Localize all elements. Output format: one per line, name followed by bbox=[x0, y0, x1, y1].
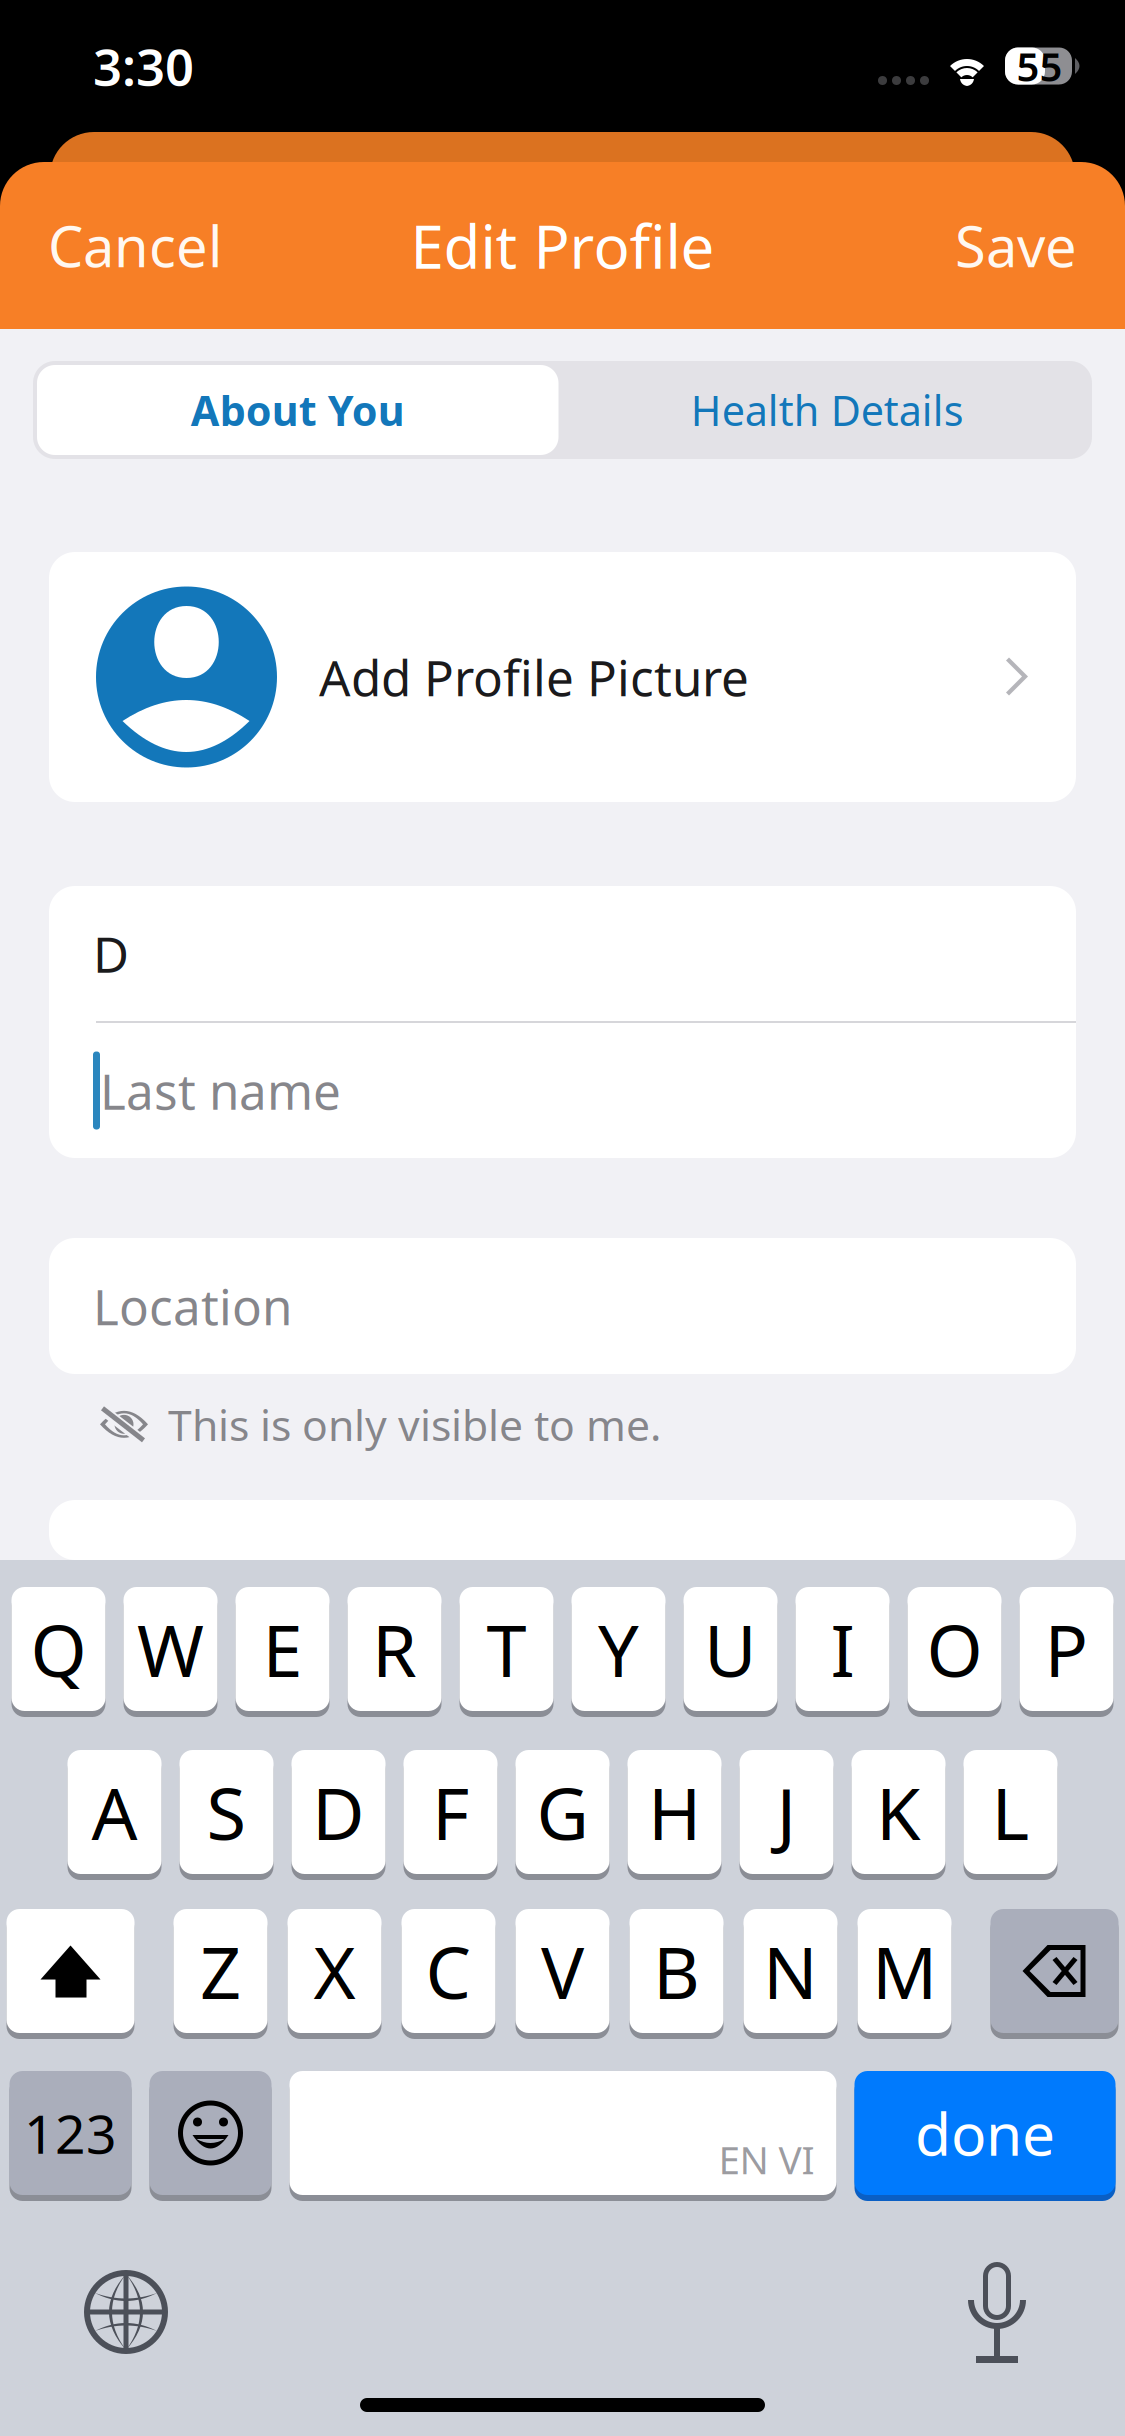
staticText: 123 bbox=[24, 2098, 117, 2168]
staticText: Cancel bbox=[48, 208, 222, 283]
button[interactable]: K bbox=[851, 1750, 945, 1880]
button[interactable]: W bbox=[123, 1587, 217, 1717]
staticText: Last name bbox=[100, 1058, 341, 1123]
staticText: D bbox=[93, 921, 129, 986]
button[interactable]: B bbox=[629, 1909, 723, 2039]
button[interactable]: C bbox=[401, 1909, 495, 2039]
staticText: 3:30 bbox=[93, 32, 194, 100]
staticText: V bbox=[541, 1923, 584, 2019]
staticText: 55 bbox=[1016, 39, 1062, 92]
button[interactable]: Cancel bbox=[34, 190, 236, 301]
staticText: D bbox=[312, 1764, 365, 1860]
button[interactable]: G bbox=[515, 1750, 609, 1880]
staticText: J bbox=[776, 1764, 796, 1860]
staticText: A bbox=[91, 1764, 137, 1860]
button[interactable]: Q bbox=[11, 1587, 105, 1717]
button[interactable]: Shift bbox=[6, 1909, 134, 2039]
button[interactable]: H bbox=[627, 1750, 721, 1880]
button[interactable]: A bbox=[67, 1750, 161, 1880]
staticText: U bbox=[704, 1601, 757, 1697]
staticText: Location bbox=[93, 1273, 292, 1339]
button[interactable]: D bbox=[291, 1750, 385, 1880]
button[interactable]: Next keyboard bbox=[85, 2271, 167, 2353]
button[interactable]: M bbox=[857, 1909, 951, 2039]
button[interactable]: S bbox=[179, 1750, 273, 1880]
staticText: About You bbox=[191, 383, 405, 437]
button[interactable]: Z bbox=[173, 1909, 267, 2039]
staticText: F bbox=[432, 1764, 469, 1860]
staticText: Edit Profile bbox=[410, 206, 714, 285]
staticText: done bbox=[915, 2094, 1055, 2172]
button[interactable]: done bbox=[854, 2071, 1115, 2201]
staticText: Save bbox=[955, 208, 1077, 283]
staticText: This is only visible to me. bbox=[168, 1396, 661, 1453]
staticText: Z bbox=[200, 1923, 241, 2019]
staticText: L bbox=[991, 1764, 1029, 1860]
button[interactable]: Save bbox=[941, 190, 1091, 301]
button[interactable]: P bbox=[1019, 1587, 1113, 1717]
button[interactable]: R bbox=[347, 1587, 441, 1717]
staticText: G bbox=[536, 1764, 588, 1860]
button[interactable]: L bbox=[963, 1750, 1057, 1880]
staticText: EN VI bbox=[718, 2134, 814, 2185]
staticText: R bbox=[372, 1601, 417, 1697]
button[interactable]: Add Profile Picture bbox=[0, 552, 1125, 802]
staticText: O bbox=[926, 1601, 982, 1697]
staticText: B bbox=[653, 1923, 700, 2019]
staticText: H bbox=[648, 1764, 701, 1860]
button[interactable]: E bbox=[235, 1587, 329, 1717]
button[interactable]: Emoji bbox=[149, 2071, 271, 2201]
staticText: Add Profile Picture bbox=[319, 644, 749, 710]
button[interactable]: About You bbox=[33, 361, 562, 459]
button[interactable]: T bbox=[459, 1587, 553, 1717]
button[interactable]: Dictate bbox=[968, 2260, 1026, 2364]
button[interactable]: X bbox=[287, 1909, 381, 2039]
button[interactable]: Space bbox=[289, 2071, 836, 2201]
button[interactable]: V bbox=[515, 1909, 609, 2039]
staticText: N bbox=[763, 1923, 818, 2019]
staticText: T bbox=[486, 1601, 526, 1697]
staticText: K bbox=[876, 1764, 921, 1860]
staticText: Q bbox=[30, 1601, 86, 1697]
button[interactable]: 123 bbox=[9, 2071, 131, 2201]
button[interactable]: Y bbox=[571, 1587, 665, 1717]
button[interactable]: O bbox=[907, 1587, 1001, 1717]
button[interactable]: J bbox=[739, 1750, 833, 1880]
staticText: W bbox=[137, 1601, 204, 1697]
button[interactable]: Delete bbox=[990, 1909, 1118, 2039]
button[interactable]: N bbox=[743, 1909, 837, 2039]
staticText: P bbox=[1044, 1601, 1088, 1697]
button[interactable]: F bbox=[403, 1750, 497, 1880]
staticText: M bbox=[872, 1923, 937, 2019]
staticText: Health Details bbox=[691, 383, 964, 437]
button[interactable]: Health Details bbox=[562, 361, 1092, 459]
staticText: S bbox=[206, 1764, 246, 1860]
button[interactable]: I bbox=[795, 1587, 889, 1717]
button[interactable]: U bbox=[683, 1587, 777, 1717]
staticText: E bbox=[262, 1601, 302, 1697]
staticText: I bbox=[830, 1601, 854, 1697]
staticText: C bbox=[425, 1923, 471, 2019]
staticText: Y bbox=[598, 1601, 639, 1697]
staticText: X bbox=[313, 1923, 355, 2019]
